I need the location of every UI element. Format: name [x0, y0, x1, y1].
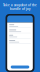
staticText: bundle of joy [10, 7, 30, 11]
staticText: Take a snapshot of the [3, 3, 37, 7]
